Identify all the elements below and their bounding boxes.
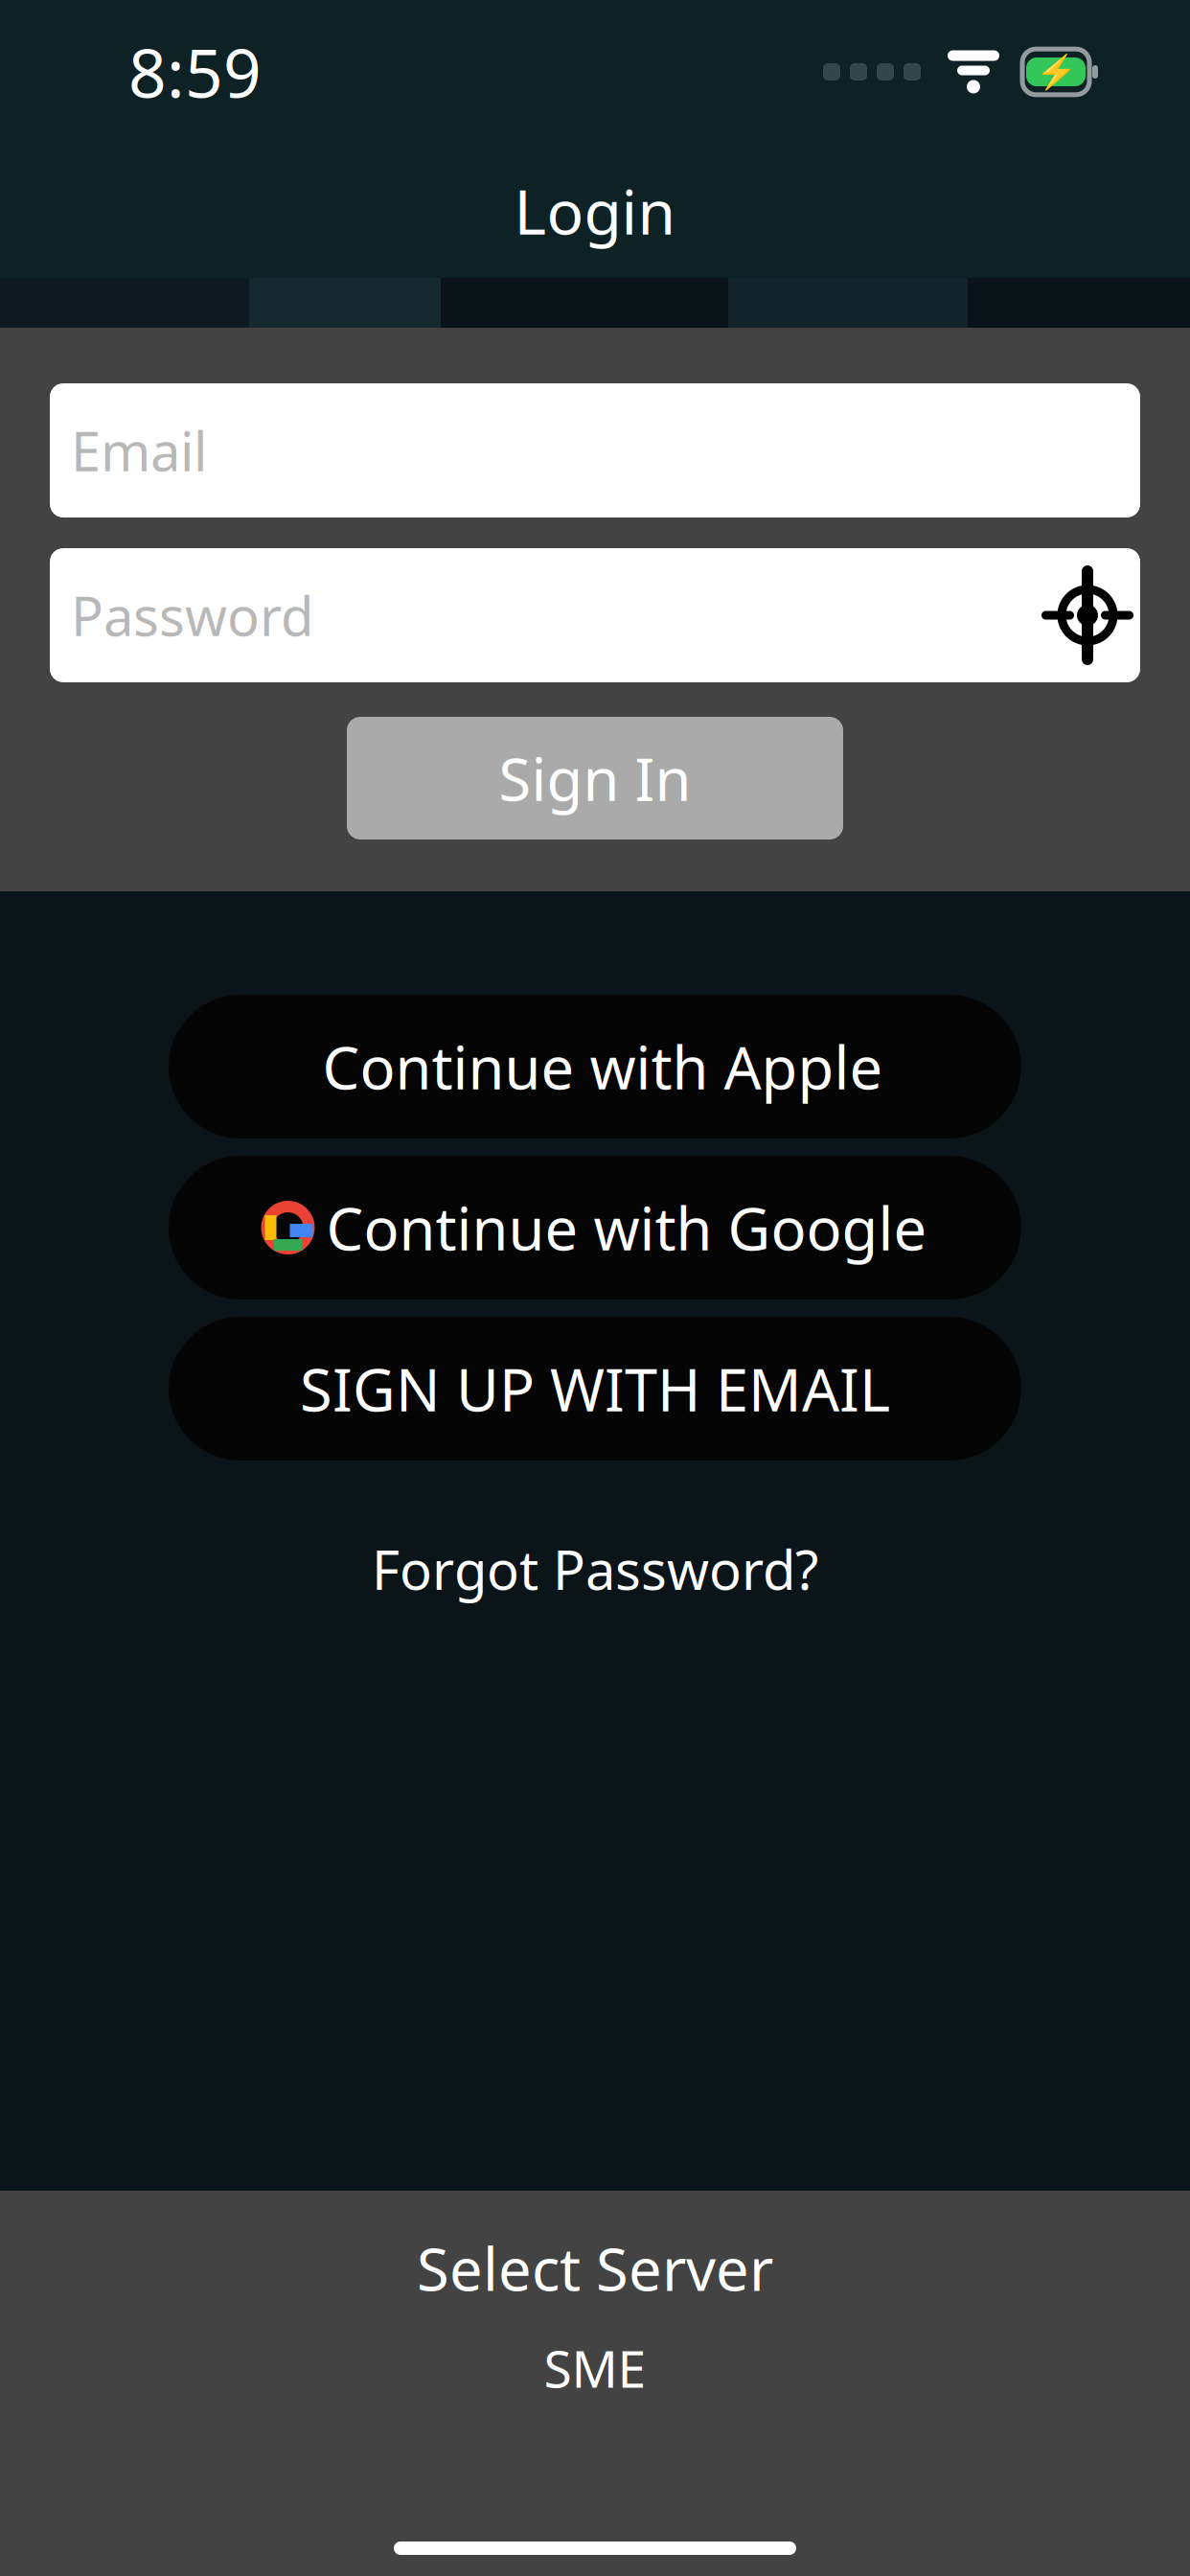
staticText: Continue with Google bbox=[326, 1189, 927, 1267]
staticText: Sign In bbox=[499, 739, 691, 817]
button[interactable]: Forgot Password? bbox=[333, 1518, 857, 1620]
staticText: Login bbox=[514, 170, 676, 252]
button[interactable] bbox=[169, 995, 1021, 1138]
staticText: Continue with Apple bbox=[322, 1028, 883, 1106]
staticText: 8:59 bbox=[128, 28, 262, 116]
button[interactable]: SIGN UP WITH EMAIL bbox=[169, 1317, 1021, 1460]
staticText: SME bbox=[544, 2334, 646, 2402]
button[interactable]: Continue with Google bbox=[169, 1156, 1021, 1299]
staticText: Password bbox=[71, 580, 313, 651]
button[interactable]: Email bbox=[50, 383, 1140, 517]
button[interactable]: Show password bbox=[1035, 563, 1140, 668]
staticText: Email bbox=[71, 415, 207, 486]
staticText: Forgot Password? bbox=[372, 1533, 818, 1605]
staticText: SIGN UP WITH EMAIL bbox=[300, 1350, 890, 1428]
button[interactable]: Select Server bbox=[0, 2191, 1190, 2440]
staticText: Select Server bbox=[417, 2229, 773, 2307]
button[interactable]: Sign In bbox=[347, 717, 843, 839]
staticText: ⚡ bbox=[1035, 53, 1076, 91]
